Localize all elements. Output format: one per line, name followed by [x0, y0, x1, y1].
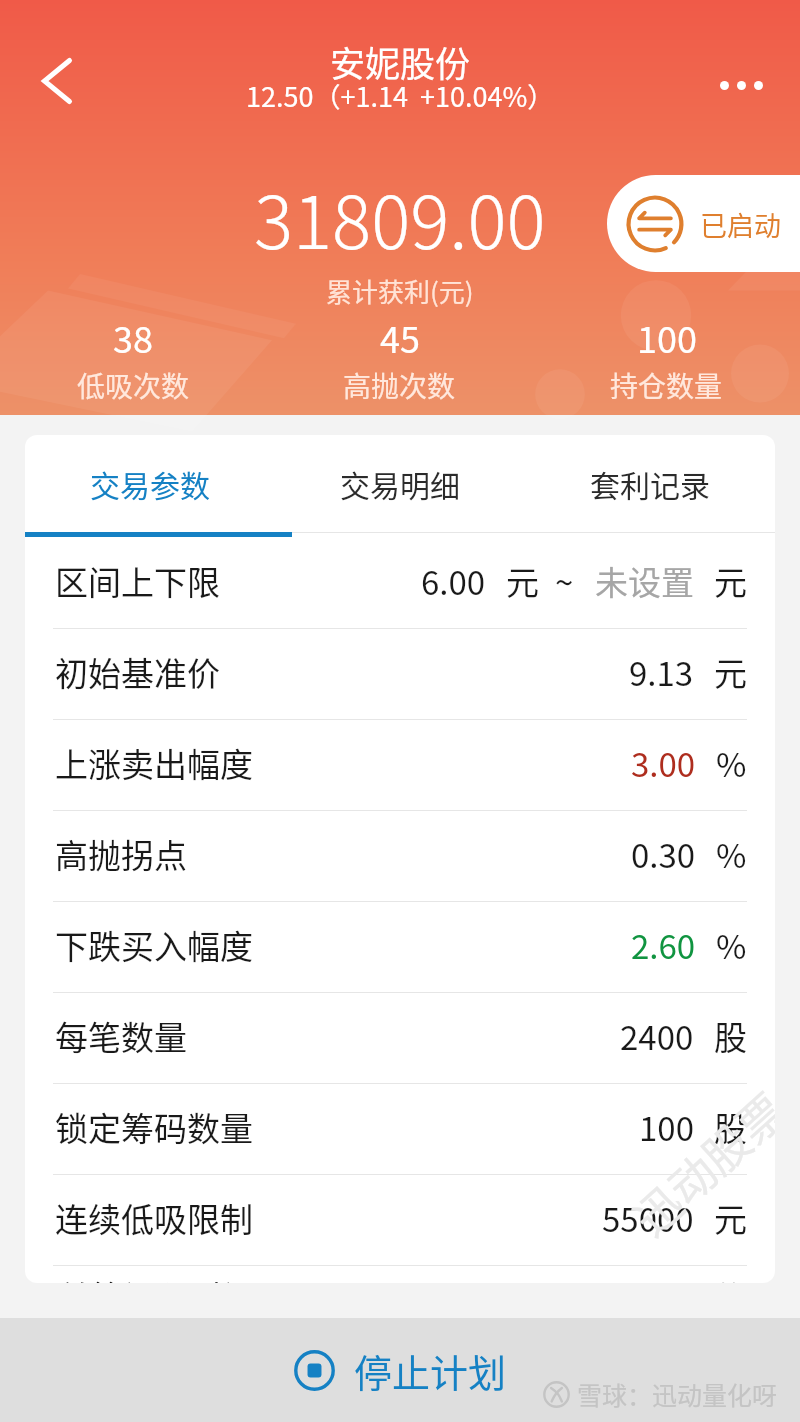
staticText: 低吸次数	[77, 365, 190, 406]
staticText: 下跌买入幅度	[55, 921, 253, 969]
button[interactable]: 套利记录	[525, 435, 775, 532]
staticText: 高抛拐点	[55, 830, 187, 878]
button[interactable]: More options	[700, 44, 782, 126]
staticText: 单笔间隔时间	[58, 1272, 256, 1283]
button[interactable]: 连续低吸限制	[25, 1175, 775, 1265]
staticText: 100	[639, 1103, 694, 1151]
button[interactable]: 每笔数量	[25, 993, 775, 1083]
staticText: 交易明细	[340, 462, 460, 505]
staticText: %	[716, 830, 747, 878]
staticText: 元	[714, 648, 747, 696]
staticText: 45	[380, 311, 420, 363]
button[interactable]: 上涨卖出幅度	[25, 720, 775, 810]
staticText: 未设置	[595, 557, 694, 605]
staticText: 元	[714, 557, 747, 605]
staticText: 31809.00	[254, 164, 546, 270]
button[interactable]: Back	[23, 47, 90, 114]
button[interactable]: 停止计划	[294, 1343, 507, 1398]
staticText: 股	[714, 1012, 747, 1060]
staticText: 2.60	[631, 921, 696, 969]
staticText: 锁定筹码数量	[55, 1103, 253, 1151]
staticText: 迅动股票APP	[617, 1018, 775, 1249]
button[interactable]: 已启动	[607, 175, 800, 272]
button[interactable]: 初始基准价	[25, 629, 775, 719]
staticText: 100	[637, 311, 697, 363]
staticText: 0.30	[631, 830, 696, 878]
staticText: 初始基准价	[55, 648, 220, 696]
button[interactable]: 区间上下限	[25, 538, 775, 628]
staticText: 交易参数	[90, 462, 210, 505]
staticText: %	[716, 921, 747, 969]
staticText: 雪球：迅动量化呀	[577, 1376, 778, 1412]
staticText: 分	[712, 1272, 745, 1283]
staticText: 9.13	[629, 648, 694, 696]
staticText: 高抛次数	[343, 365, 456, 406]
button[interactable]: 锁定筹码数量	[25, 1084, 775, 1174]
button[interactable]: 下跌买入幅度	[25, 902, 775, 992]
button[interactable]: 交易明细	[275, 435, 525, 532]
staticText: 连续低吸限制	[55, 1194, 253, 1242]
button[interactable]: 高抛拐点	[25, 811, 775, 901]
staticText: 安妮股份	[330, 36, 471, 87]
staticText: 持仓数量	[610, 365, 723, 406]
staticText: 上涨卖出幅度	[55, 739, 253, 787]
staticText: 套利记录	[590, 462, 710, 505]
staticText: 元	[714, 1194, 747, 1242]
staticText: 3.00	[631, 739, 696, 787]
staticText: 区间上下限	[55, 557, 220, 605]
staticText: ~	[555, 557, 574, 605]
button[interactable]: 交易参数	[25, 435, 275, 532]
staticText: 元	[506, 557, 539, 605]
staticText: %	[716, 739, 747, 787]
staticText: 12.50（+1.14 +10.04%）	[246, 76, 555, 115]
staticText: 已启动	[700, 205, 781, 244]
staticText: 每笔数量	[55, 1012, 187, 1060]
staticText: 2400	[620, 1012, 694, 1060]
staticText: 38	[113, 311, 153, 363]
staticText: 6.00	[421, 557, 486, 605]
staticText: 停止计划	[354, 1343, 507, 1398]
staticText: 股	[714, 1103, 747, 1151]
staticText: 55000	[602, 1194, 694, 1242]
staticText: 累计获利(元)	[326, 272, 474, 310]
